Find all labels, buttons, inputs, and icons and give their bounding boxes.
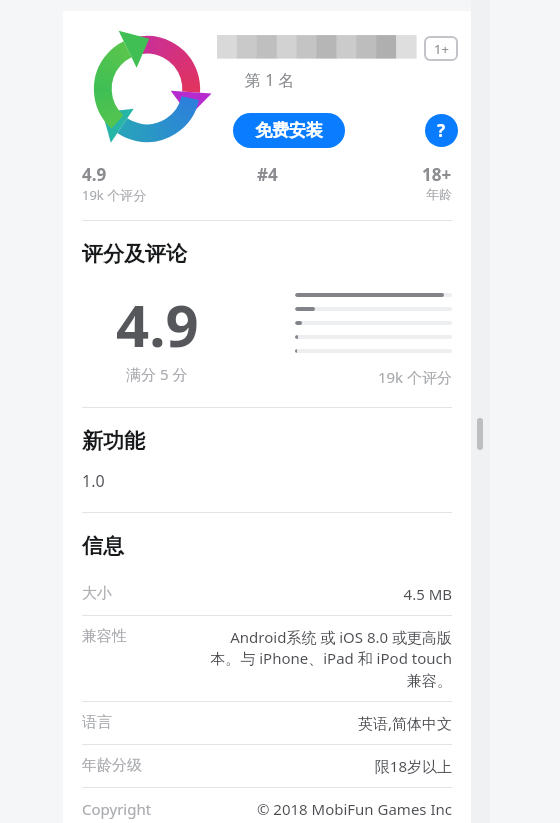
staticText: 4.5 MB xyxy=(403,584,452,604)
staticText: 语言 xyxy=(82,713,112,732)
button[interactable]: Help xyxy=(425,114,458,147)
staticText: 18+ xyxy=(422,163,452,186)
button[interactable]: 1+ xyxy=(424,36,458,61)
staticText: 评分及评论 xyxy=(82,241,187,267)
staticText: 新功能 xyxy=(82,428,145,454)
staticText: 第 1 名 xyxy=(245,69,295,91)
staticText: 19k 个评分 xyxy=(82,186,147,204)
staticText: 英语,简体中文 xyxy=(357,713,452,733)
staticText: 4.9 xyxy=(116,285,199,364)
staticText: 免费安装 xyxy=(255,120,323,141)
staticText: 4.9 xyxy=(82,163,107,186)
staticText: #4 xyxy=(257,163,278,186)
staticText: 年龄 xyxy=(426,186,452,202)
staticText: 信息 xyxy=(82,533,124,559)
staticText: Android系统 或 iOS 8.0 或更高版本。与 iPhone、iPad … xyxy=(202,627,452,690)
staticText: 大小 xyxy=(82,584,112,603)
staticText: 1+ xyxy=(434,40,449,58)
staticText: 限18岁以上 xyxy=(374,756,452,776)
button[interactable]: 免费安装 xyxy=(233,113,345,148)
staticText: 1.0 xyxy=(82,470,105,492)
staticText: ? xyxy=(437,119,446,142)
staticText: 兼容性 xyxy=(82,627,127,646)
staticText: © 2018 MobiFun Games Inc xyxy=(256,799,452,819)
staticText: 年龄分级 xyxy=(82,756,142,775)
staticText: 满分 5 分 xyxy=(126,364,188,384)
staticText: 19k 个评分 xyxy=(295,367,452,387)
staticText: Copyright xyxy=(82,799,152,819)
